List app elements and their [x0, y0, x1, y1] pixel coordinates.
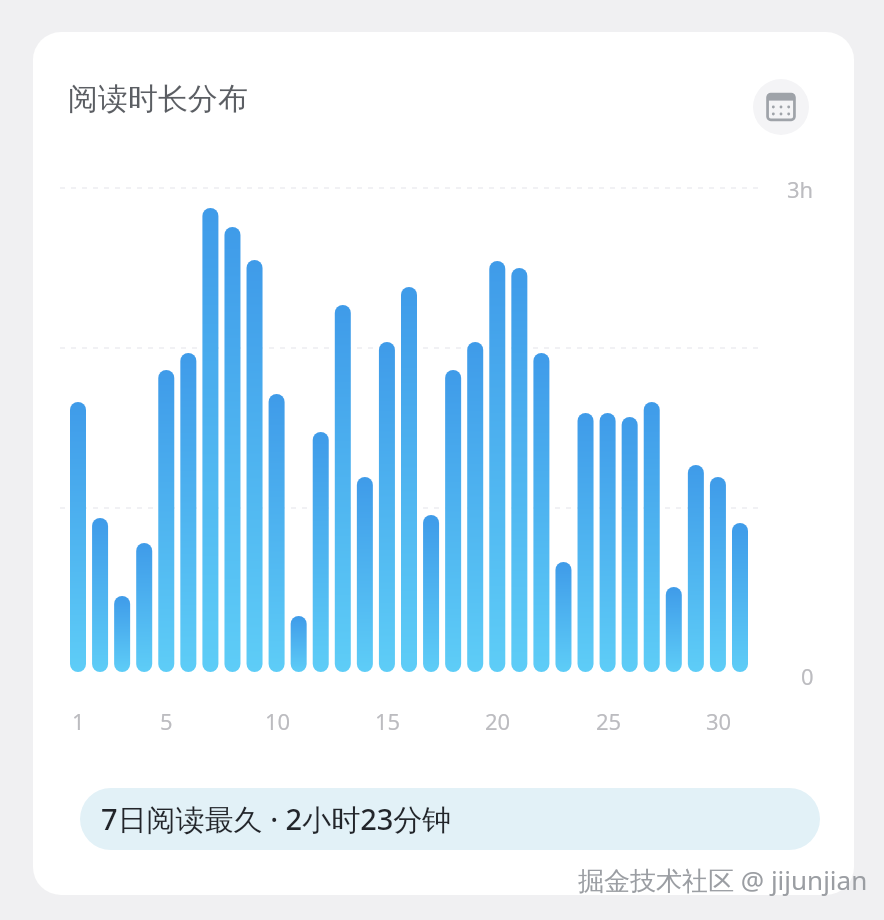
- staticText: 1: [72, 706, 85, 736]
- staticText: 25: [596, 706, 622, 736]
- staticText: 30: [706, 706, 732, 736]
- staticText: 10: [265, 706, 291, 736]
- button[interactable]: 7日阅读最久 · 2小时23分钟: [80, 788, 820, 850]
- staticText: 15: [375, 706, 401, 736]
- staticText: 阅读时长分布: [68, 80, 248, 118]
- button[interactable]: Select date range: [753, 79, 809, 135]
- staticText: 20: [485, 706, 511, 736]
- staticText: 掘金技术社区 @ jijunjian: [578, 862, 868, 898]
- staticText: 5: [160, 706, 173, 736]
- staticText: 3h: [787, 174, 814, 204]
- staticText: 0: [801, 661, 814, 691]
- staticText: 7日阅读最久 · 2小时23分钟: [101, 799, 452, 839]
